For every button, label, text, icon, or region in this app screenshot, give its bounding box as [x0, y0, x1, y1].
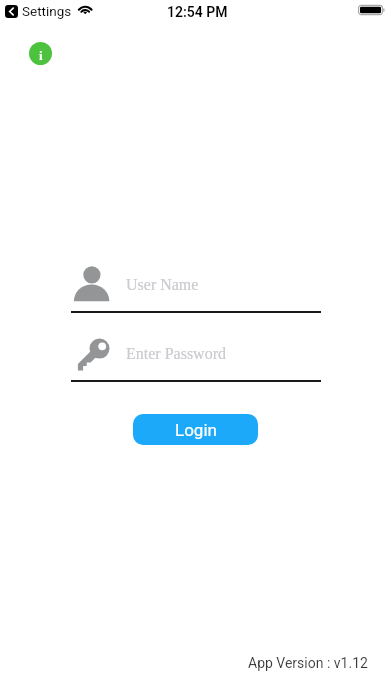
button[interactable]: Enter Password: [71, 330, 321, 381]
staticText: User Name: [126, 276, 199, 294]
button[interactable]: User Name: [71, 259, 321, 313]
staticText: 12:54 PM: [167, 4, 228, 20]
button[interactable]: Login: [133, 414, 258, 445]
staticText: i: [39, 48, 43, 62]
staticText: Settings: [22, 3, 72, 19]
staticText: App Version : v1.12: [248, 655, 368, 671]
staticText: Login: [175, 420, 217, 440]
staticText: Enter Password: [126, 345, 226, 363]
button[interactable]: Back to Settings: [5, 5, 18, 18]
button[interactable]: Information: [29, 42, 52, 65]
